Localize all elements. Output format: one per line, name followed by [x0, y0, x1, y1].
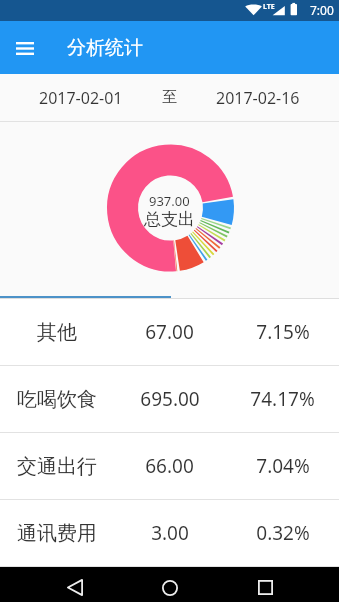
staticText: 67.00 — [145, 319, 194, 345]
staticText: 2017-02-16 — [216, 87, 300, 109]
staticText: 交通出行 — [17, 454, 97, 479]
staticText: 0.32% — [256, 520, 310, 546]
staticText: 通讯费用 — [17, 521, 97, 546]
staticText: 其他 — [37, 320, 77, 345]
button[interactable]: Home — [150, 570, 190, 602]
staticText: 695.00 — [140, 386, 200, 412]
staticText: 937.00 — [149, 192, 190, 210]
button[interactable]: Recents — [245, 570, 285, 602]
button[interactable]: Back — [55, 570, 95, 602]
staticText: 分析统计 — [67, 36, 143, 60]
button[interactable]: 其他 — [0, 299, 339, 365]
staticText: 7:00 — [310, 2, 334, 18]
button[interactable]: 交通出行 — [0, 433, 339, 499]
staticText: 74.17% — [250, 386, 315, 412]
staticText: LTE — [263, 2, 275, 12]
staticText: 2017-02-01 — [39, 87, 123, 109]
staticText: 吃喝饮食 — [17, 387, 97, 412]
staticText: 3.00 — [151, 520, 189, 546]
staticText: 66.00 — [145, 453, 194, 479]
button[interactable]: Menu — [10, 33, 40, 63]
staticText: 7.15% — [256, 319, 310, 345]
staticText: 总支出 — [144, 209, 195, 230]
button[interactable]: 吃喝饮食 — [0, 366, 339, 432]
staticText: 至 — [162, 88, 177, 107]
staticText: 7.04% — [256, 453, 310, 479]
button[interactable]: 2017-02-16 — [177, 74, 339, 121]
button[interactable]: 通讯费用 — [0, 500, 339, 566]
button[interactable]: 2017-02-01 — [0, 74, 162, 121]
